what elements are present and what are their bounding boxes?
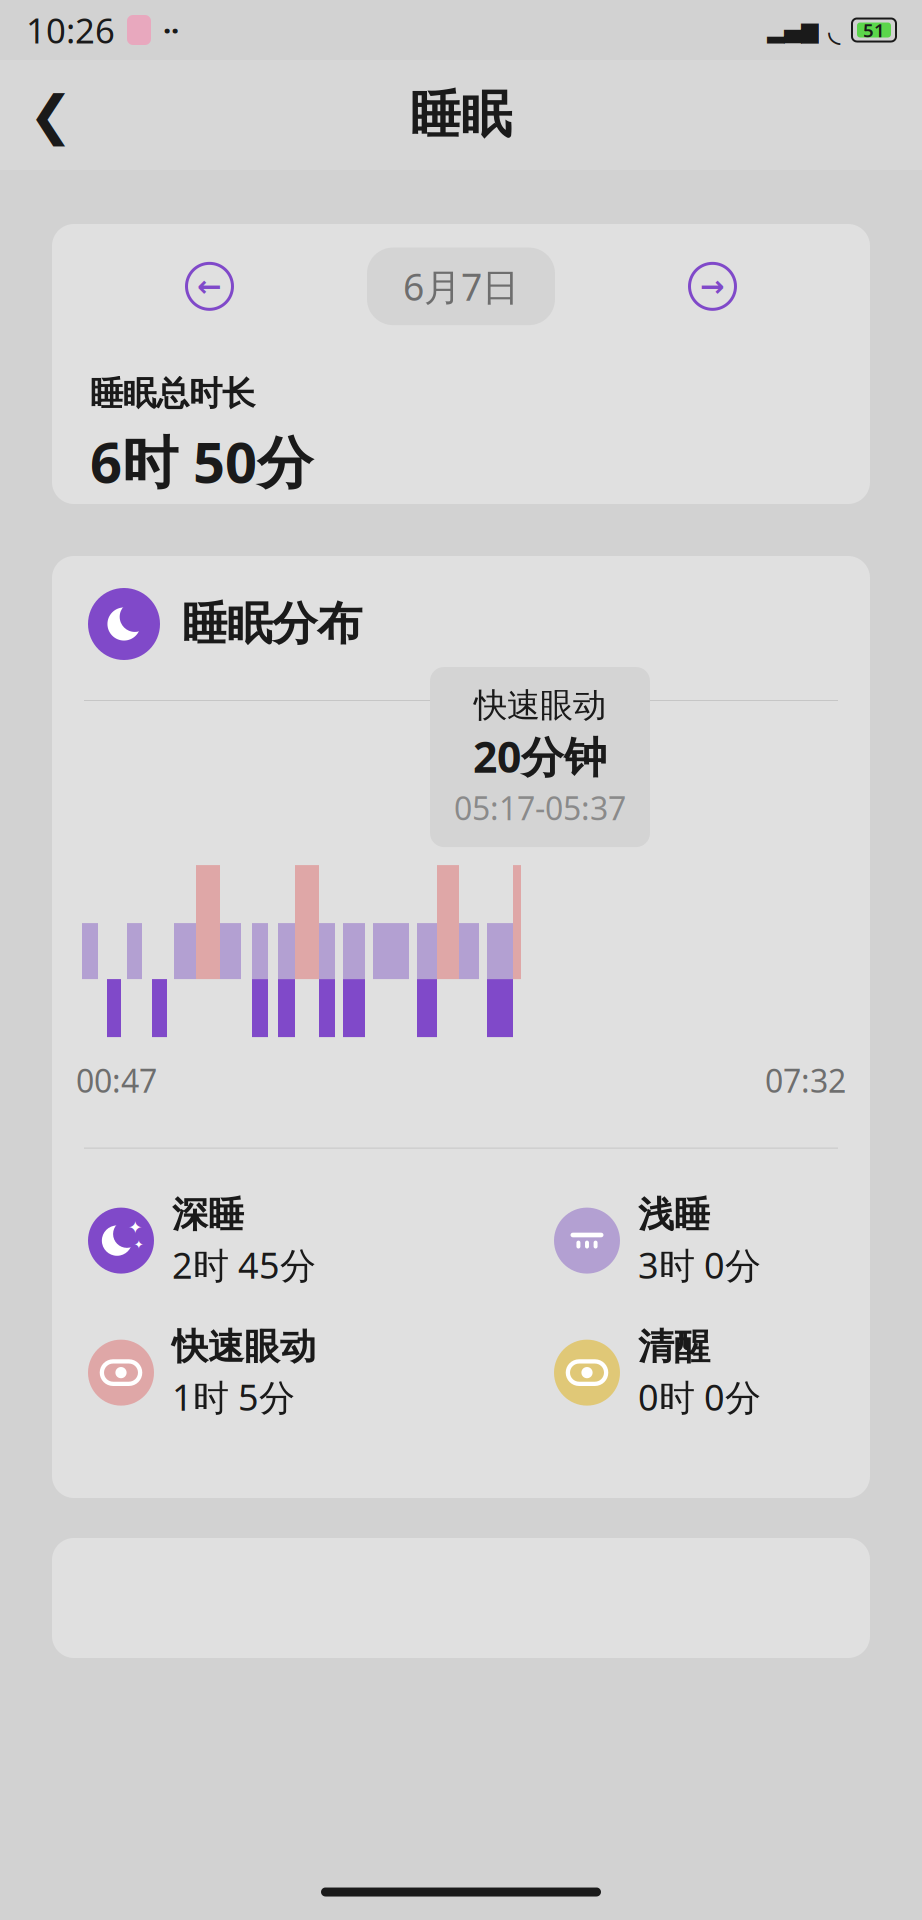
staticText: ▂▄▆ [767, 17, 818, 43]
staticText: ❮ [28, 85, 73, 145]
staticText: 快速眼动 [474, 685, 606, 726]
staticText: 0时 0分 [638, 1373, 761, 1421]
button[interactable]: 后一天 [682, 256, 742, 316]
staticText: ·· [163, 10, 179, 49]
staticText: 07:32 [765, 1059, 846, 1102]
staticText: 快速眼动 [172, 1325, 316, 1369]
button[interactable]: 6月7日 [367, 248, 555, 325]
staticText: 10:26 [26, 7, 115, 53]
staticText: ◟ [828, 12, 840, 48]
staticText: 1时 5分 [172, 1373, 295, 1421]
staticText: 深睡 [172, 1193, 244, 1237]
staticText: 00:47 [76, 1059, 157, 1102]
staticText: ← [197, 270, 222, 303]
staticText: 2时 45分 [172, 1241, 316, 1289]
button[interactable]: 返回 [16, 80, 86, 150]
staticText: 清醒 [638, 1325, 710, 1369]
staticText: 20分钟 [473, 728, 607, 785]
staticText: 睡眠总时长 [90, 373, 255, 414]
staticText: 6时 50分 [90, 424, 313, 498]
staticText: 浅睡 [638, 1193, 710, 1237]
staticText: 睡眠分布 [182, 596, 362, 652]
button[interactable]: 前一天 [179, 256, 239, 316]
staticText: 睡眠 [410, 84, 512, 146]
staticText: ✦ [128, 1218, 143, 1237]
staticText: 51 [863, 18, 885, 42]
staticText: → [700, 270, 725, 303]
staticText: 6月7日 [403, 262, 519, 311]
staticText: ✦ [134, 1238, 144, 1251]
staticText: 3时 0分 [638, 1241, 761, 1289]
staticText: 05:17-05:37 [454, 787, 626, 829]
